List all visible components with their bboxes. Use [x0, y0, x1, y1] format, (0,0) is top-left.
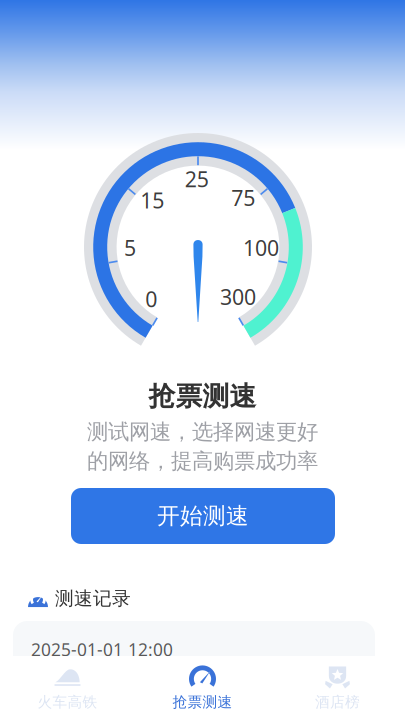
- staticText: 25: [185, 165, 209, 193]
- staticText: 300: [220, 282, 256, 311]
- button[interactable]: 酒店榜: [270, 656, 405, 720]
- staticText: 5: [124, 234, 136, 262]
- staticText: 抢票测速: [148, 380, 256, 413]
- staticText: 开始测速: [157, 502, 249, 530]
- staticText: 的网络，提高购票成功率: [87, 448, 318, 474]
- button[interactable]: 开始测速: [71, 488, 335, 544]
- staticText: 100: [243, 234, 279, 262]
- staticText: 测速记录: [55, 587, 131, 610]
- staticText: 测试网速，选择网速更好: [87, 419, 318, 445]
- staticText: 火车高铁: [37, 693, 97, 711]
- staticText: 酒店榜: [315, 693, 360, 711]
- staticText: 15: [140, 186, 164, 214]
- staticText: 2025-01-01 12:00: [31, 638, 173, 661]
- staticText: 75: [231, 183, 255, 212]
- button[interactable]: 抢票测速: [135, 656, 270, 720]
- staticText: 0: [145, 285, 157, 313]
- button[interactable]: 火车高铁: [0, 656, 135, 720]
- staticText: 抢票测速: [172, 693, 232, 711]
